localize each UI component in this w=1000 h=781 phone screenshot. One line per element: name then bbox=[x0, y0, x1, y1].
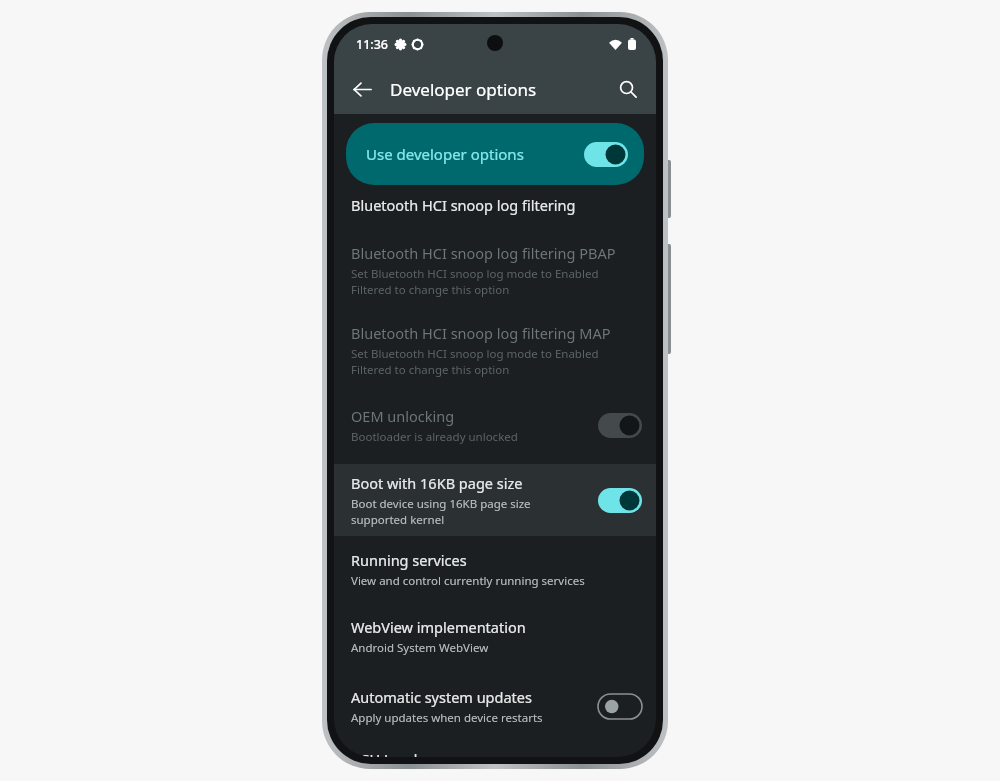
button[interactable]: Search bbox=[608, 69, 648, 109]
staticText: Set Bluetooth HCI snoop log mode to Enab… bbox=[351, 266, 636, 297]
button[interactable]: Bluetooth HCI snoop log filtering PBAP bbox=[334, 237, 656, 303]
button[interactable]: Use developer options bbox=[346, 123, 644, 185]
staticText: Bootloader is already unlocked bbox=[351, 429, 518, 445]
staticText: Set Bluetooth HCI snoop log mode to Enab… bbox=[351, 346, 636, 377]
staticText: Running services bbox=[351, 550, 467, 570]
button[interactable]: Back bbox=[342, 69, 382, 109]
staticText: WebView implementation bbox=[351, 617, 526, 637]
staticText: DSU Loader bbox=[351, 749, 432, 757]
staticText: Automatic system updates bbox=[351, 687, 532, 707]
button[interactable]: Bluetooth HCI snoop log filtering bbox=[334, 189, 656, 221]
staticText: Bluetooth HCI snoop log filtering MAP bbox=[351, 323, 611, 343]
staticText: Bluetooth HCI snoop log filtering PBAP bbox=[351, 243, 616, 263]
staticText: Boot device using 16KB page size support… bbox=[351, 496, 588, 527]
staticText: Apply updates when device restarts bbox=[351, 710, 543, 726]
staticText: Use developer options bbox=[366, 144, 524, 164]
staticText: View and control currently running servi… bbox=[351, 573, 585, 589]
button[interactable]: Automatic system updates bbox=[334, 678, 656, 735]
button[interactable]: Bluetooth HCI snoop log filtering MAP bbox=[334, 317, 656, 383]
button[interactable]: OEM unlocking bbox=[334, 397, 656, 454]
staticText: OEM unlocking bbox=[351, 406, 455, 426]
staticText: 11:36 bbox=[356, 36, 389, 53]
button[interactable]: Boot with 16KB page size bbox=[334, 464, 656, 536]
staticText: Boot with 16KB page size bbox=[351, 473, 523, 493]
staticText: Android System WebView bbox=[351, 640, 489, 656]
staticText: Developer options bbox=[390, 78, 537, 101]
staticText: Bluetooth HCI snoop log filtering bbox=[351, 195, 576, 215]
button[interactable]: WebView implementation bbox=[334, 611, 656, 662]
button[interactable]: Running services bbox=[334, 544, 656, 595]
